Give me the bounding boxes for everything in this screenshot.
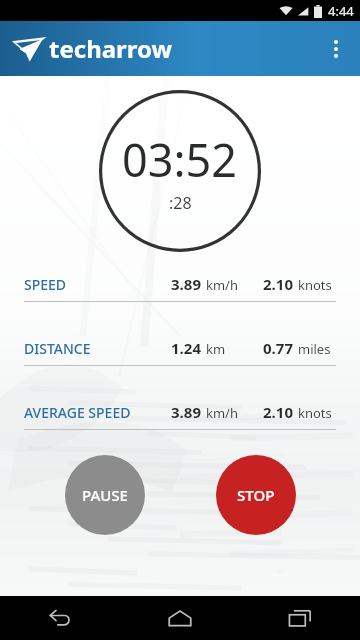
staticText: SPEED	[24, 275, 67, 294]
staticText: 3.89	[157, 402, 201, 422]
staticText: km/h	[206, 404, 243, 422]
staticText: AVERAGE SPEED	[24, 403, 131, 422]
button[interactable]: PAUSE	[65, 455, 145, 535]
staticText: 4:44	[328, 2, 354, 20]
staticText: miles	[298, 340, 336, 358]
button[interactable]: Back	[0, 596, 120, 640]
staticText: techarrow	[49, 32, 173, 65]
staticText: 3.89	[157, 274, 201, 294]
staticText: DISTANCE	[24, 339, 91, 358]
staticText: 0.77	[251, 338, 293, 358]
staticText: STOP	[237, 485, 275, 505]
staticText: 2.10	[251, 402, 293, 422]
button[interactable]: Home	[120, 596, 240, 640]
staticText: km	[206, 340, 243, 358]
staticText: :28	[169, 192, 192, 214]
staticText: knots	[298, 404, 336, 422]
staticText: km/h	[206, 276, 243, 294]
staticText: 1.24	[157, 338, 201, 358]
staticText: 2.10	[251, 274, 293, 294]
button[interactable]: More options	[312, 25, 360, 73]
staticText: 03:52	[122, 129, 238, 190]
button[interactable]: STOP	[216, 455, 296, 535]
staticText: knots	[298, 276, 336, 294]
staticText: PAUSE	[82, 485, 128, 505]
button[interactable]: Recent apps	[240, 596, 360, 640]
